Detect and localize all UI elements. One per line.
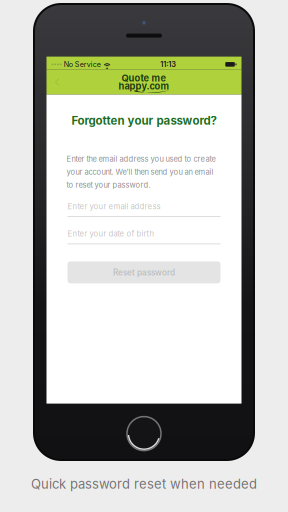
staticText: Quick password reset when needed	[31, 476, 257, 492]
staticText: to reset your password.	[66, 180, 150, 190]
staticText: Forgotten your password?	[71, 114, 216, 127]
staticText: Enter the email address you used to crea…	[66, 154, 215, 164]
button[interactable]: Reset password	[67, 261, 220, 283]
button[interactable]: Enter your email address	[67, 202, 220, 217]
staticText: Enter your email address	[67, 202, 160, 211]
staticText: Enter your date of birth	[67, 229, 154, 238]
button[interactable]: Enter your date of birth	[67, 229, 220, 244]
staticText: 11:13	[160, 60, 176, 69]
staticText: Quote me	[121, 72, 166, 84]
staticText: happy.com	[118, 80, 169, 92]
staticText: Reset password	[113, 267, 175, 277]
staticText: your account. We'll then send you an ema…	[66, 167, 213, 177]
staticText: No Service	[64, 60, 101, 69]
